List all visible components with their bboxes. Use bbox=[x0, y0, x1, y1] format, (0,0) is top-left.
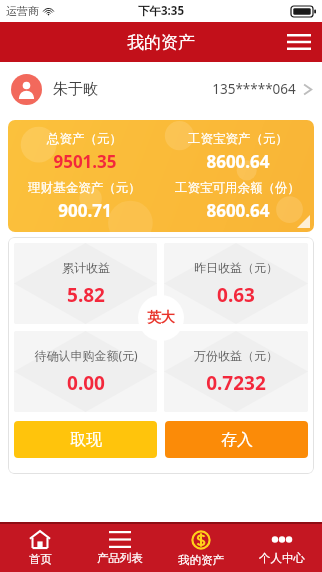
staticText: 工资宝资产（元） bbox=[188, 131, 288, 147]
staticText: 135*****064 bbox=[212, 80, 296, 98]
button[interactable]: 待确认申购金额(元) bbox=[14, 331, 157, 412]
staticText: 朱于畋 bbox=[53, 80, 98, 99]
button[interactable]: 万份收益（元） bbox=[164, 331, 308, 412]
button[interactable]: Menu bbox=[276, 22, 322, 62]
staticText: 5.82 bbox=[67, 282, 105, 308]
staticText: 万份收益（元） bbox=[194, 348, 278, 363]
staticText: 累计收益 bbox=[62, 260, 110, 275]
staticText: 8600.64 bbox=[206, 199, 270, 222]
staticText: 工资宝可用余额（份） bbox=[175, 180, 300, 196]
staticText: 个人中心 bbox=[259, 551, 305, 565]
staticText: 0.63 bbox=[217, 282, 255, 308]
staticText: 首页 bbox=[29, 552, 52, 566]
staticText: 我的资产 bbox=[127, 32, 195, 53]
button[interactable]: 首页 bbox=[0, 524, 80, 572]
staticText: 0.00 bbox=[67, 370, 105, 396]
button[interactable]: 朱于畋 bbox=[0, 62, 322, 116]
staticText: 英大 bbox=[147, 309, 175, 327]
staticText: 900.71 bbox=[58, 199, 112, 222]
button[interactable]: 昨日收益（元） bbox=[164, 243, 308, 324]
staticText: 产品列表 bbox=[97, 551, 143, 565]
button[interactable]: 存入 bbox=[165, 421, 308, 458]
staticText: 运营商 bbox=[6, 4, 39, 18]
button[interactable]: 个人中心 bbox=[241, 524, 322, 572]
button[interactable]: 取现 bbox=[14, 421, 157, 458]
staticText: 下午3:35 bbox=[138, 3, 184, 19]
button[interactable]: 我的资产 bbox=[160, 524, 241, 572]
staticText: 存入 bbox=[221, 430, 253, 450]
staticText: 9501.35 bbox=[53, 150, 117, 173]
button[interactable]: 总资产（元） bbox=[8, 120, 314, 232]
staticText: 8600.64 bbox=[206, 150, 270, 173]
staticText: 理财基金资产（元） bbox=[28, 180, 141, 196]
staticText: 昨日收益（元） bbox=[194, 260, 278, 275]
button[interactable]: 累计收益 bbox=[14, 243, 157, 324]
staticText: 待确认申购金额(元) bbox=[34, 347, 138, 363]
button[interactable]: 产品列表 bbox=[80, 524, 160, 572]
staticText: 总资产（元） bbox=[47, 131, 122, 147]
staticText: 我的资产 bbox=[178, 553, 224, 567]
staticText: 0.7232 bbox=[206, 370, 266, 396]
staticText: 取现 bbox=[70, 430, 102, 450]
